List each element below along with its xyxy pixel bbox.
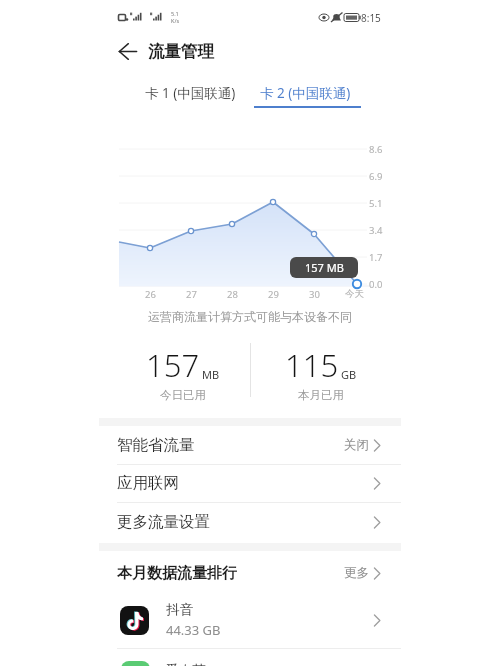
staticText: 本月数据流量排行 — [117, 564, 237, 583]
staticText: 157 — [146, 344, 200, 386]
button[interactable]: 卡 1 (中国联通) — [138, 79, 242, 107]
staticText: 8:15 — [361, 11, 381, 25]
staticText: GB — [341, 367, 357, 382]
staticText: 关闭 — [344, 437, 369, 453]
staticText: 8.6 — [369, 143, 383, 156]
staticText: 3.4 — [369, 224, 383, 237]
staticText: 今日已用 — [160, 388, 206, 402]
staticText: 卡 1 (中国联通) — [145, 84, 236, 102]
button[interactable]: 应用联网 — [99, 464, 401, 502]
staticText: 6.9 — [369, 170, 383, 183]
staticText: 流量管理 — [148, 41, 214, 62]
button[interactable]: 智能省流量 — [99, 426, 401, 464]
staticText: 27 — [186, 288, 197, 301]
staticText: 爱奇艺 — [165, 662, 206, 666]
staticText: 抖音 — [166, 601, 193, 618]
staticText: 115 — [285, 344, 339, 386]
staticText: 卡 2 (中国联通) — [260, 84, 351, 102]
staticText: 运营商流量计算方式可能与本设备不同 — [148, 309, 352, 324]
button[interactable]: 抖音 — [99, 592, 401, 648]
staticText: 智能省流量 — [117, 435, 195, 455]
staticText: 30 — [309, 288, 320, 301]
staticText: 今天 — [345, 288, 364, 300]
staticText: 5.1 — [171, 10, 179, 17]
staticText: 26 — [145, 288, 156, 301]
staticText: 29 — [268, 288, 279, 301]
staticText: 157 MB — [305, 260, 344, 275]
staticText: 应用联网 — [117, 473, 179, 493]
staticText: K/s — [171, 17, 180, 24]
staticText: 本月已用 — [298, 388, 344, 402]
button[interactable]: 卡 2 (中国联通) — [250, 79, 360, 107]
button[interactable]: 爱奇艺 — [99, 659, 401, 666]
staticText: MB — [202, 367, 220, 382]
staticText: 44.33 GB — [166, 621, 221, 639]
button[interactable]: 更多 — [344, 565, 381, 581]
staticText: 更多流量设置 — [117, 512, 210, 532]
staticText: 0.0 — [369, 278, 383, 291]
staticText: 5.1 — [369, 197, 383, 210]
button[interactable]: Back — [114, 37, 142, 65]
staticText: 28 — [227, 288, 238, 301]
staticText: 1.7 — [369, 251, 383, 264]
staticText: 更多 — [344, 565, 369, 581]
button[interactable]: 更多流量设置 — [99, 503, 401, 541]
